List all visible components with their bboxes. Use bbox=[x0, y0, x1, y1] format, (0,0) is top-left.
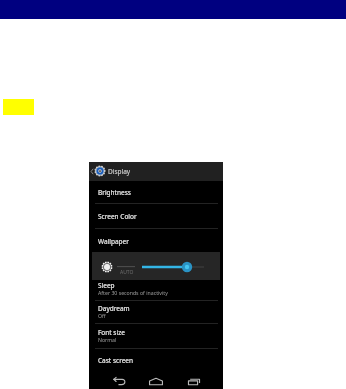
button[interactable]: AUTO bbox=[92, 252, 220, 280]
staticText: Display bbox=[108, 167, 131, 176]
staticText: Font size bbox=[98, 328, 125, 337]
button[interactable]: Daydream bbox=[89, 301, 223, 324]
button[interactable]: Recent apps bbox=[176, 373, 212, 389]
staticText: Cast screen bbox=[98, 356, 134, 365]
button[interactable]: Wallpaper bbox=[89, 229, 223, 254]
button[interactable]: Display settings, navigate up bbox=[89, 162, 223, 181]
staticText: After 30 seconds of inactivity bbox=[98, 289, 168, 296]
staticText: Brightness bbox=[98, 188, 131, 197]
staticText: Wallpaper bbox=[98, 237, 129, 246]
button[interactable]: Screen Color bbox=[89, 204, 223, 229]
staticText: Off bbox=[98, 312, 106, 319]
staticText: Sleep bbox=[98, 281, 115, 290]
staticText: Normal bbox=[98, 336, 117, 343]
staticText: Screen Color bbox=[98, 212, 137, 221]
button[interactable]: Cast screen bbox=[89, 349, 223, 374]
staticText: AUTO bbox=[120, 269, 134, 276]
staticText: Daydream bbox=[98, 304, 130, 313]
button[interactable]: Back bbox=[101, 373, 137, 389]
button[interactable]: Brightness bbox=[89, 181, 223, 204]
button[interactable]: Font size bbox=[89, 324, 223, 349]
button[interactable]: Home bbox=[137, 373, 175, 389]
button[interactable]: Sleep bbox=[89, 281, 223, 301]
